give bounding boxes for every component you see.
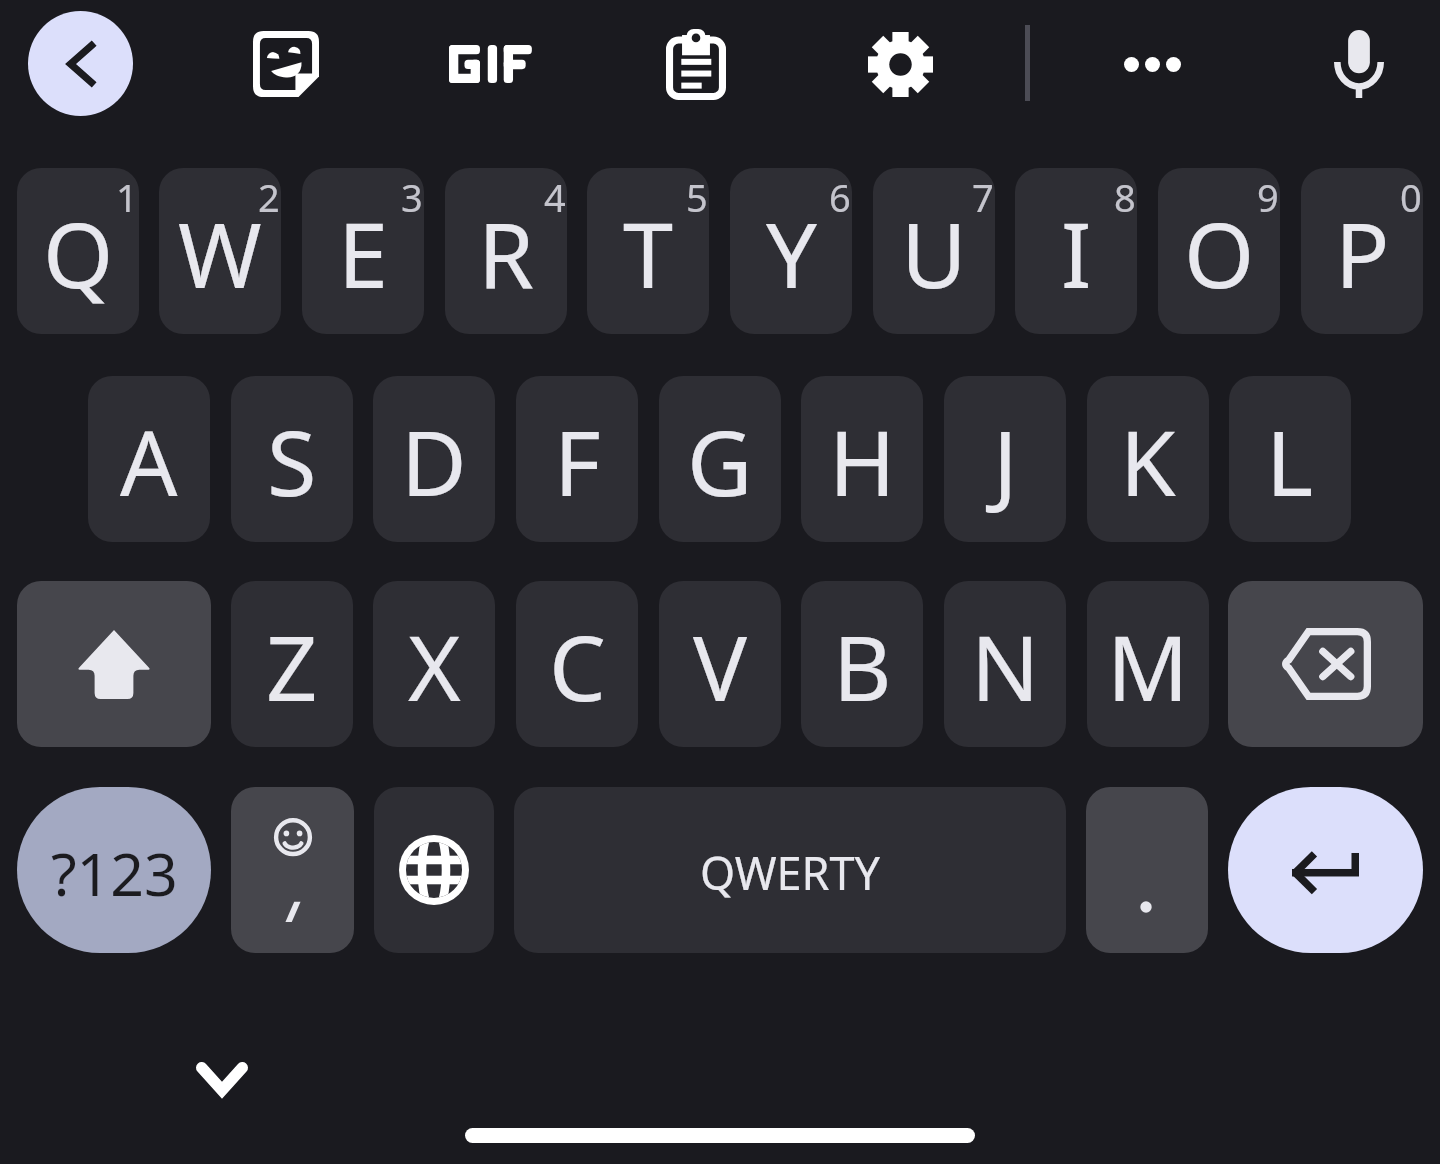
staticText: 2 [258,171,280,223]
button[interactable]: Z [231,581,353,747]
staticText: G [687,400,753,523]
staticText: N [971,605,1040,728]
button[interactable]: O [1158,168,1280,334]
button[interactable]: QWERTY [514,787,1066,953]
staticText: 4 [544,171,566,223]
staticText: X [408,605,461,728]
staticText: T [623,192,674,315]
button[interactable]: L [1229,376,1351,542]
staticText: Y [766,192,817,315]
button[interactable]: Q [17,168,139,334]
button[interactable]: Hide keyboard [172,1029,272,1129]
staticText: QWERTY [700,842,881,903]
staticText: O [1184,192,1255,315]
button[interactable]: Enter [1228,787,1423,953]
staticText: D [401,400,467,523]
staticText: 1 [116,171,138,223]
staticText: C [549,605,606,728]
staticText: 6 [829,171,851,223]
staticText: 9 [1257,171,1279,223]
staticText: A [120,400,178,523]
button[interactable]: Backspace [1228,581,1423,747]
staticText: W [178,192,262,315]
button[interactable]: A [88,376,210,542]
button[interactable]: GIF [436,9,546,119]
staticText: P [1335,192,1390,315]
staticText: J [993,400,1018,523]
staticText: ?123 [51,833,178,913]
button[interactable]: J [944,376,1066,542]
button[interactable]: Switch language [374,787,494,953]
button[interactable]: Settings [845,9,955,119]
staticText: U [901,192,967,315]
button[interactable]: Back [28,11,133,116]
staticText: E [338,192,389,315]
staticText: 7 [972,171,994,223]
staticText: 0 [1400,171,1422,223]
button[interactable]: Y [730,168,852,334]
button[interactable]: R [445,168,567,334]
button[interactable]: Stickers [231,9,341,119]
button[interactable]: V [659,581,781,747]
staticText: F [554,400,601,523]
button[interactable]: X [373,581,495,747]
staticText: 5 [686,171,708,223]
staticText: H [829,400,896,523]
button[interactable]: Clipboard [641,9,751,119]
button[interactable]: Shift [17,581,211,747]
staticText: L [1266,400,1314,523]
button[interactable]: K [1087,376,1209,542]
button[interactable]: ?123 [17,787,211,953]
staticText: Q [43,192,114,315]
staticText: K [1120,400,1176,523]
button[interactable]: C [516,581,638,747]
staticText: Z [266,605,318,728]
button[interactable]: B [801,581,923,747]
button[interactable]: Voice input [1304,9,1414,119]
button[interactable]: Period [1086,787,1208,953]
button[interactable]: Emoji [231,787,354,953]
button[interactable]: D [373,376,495,542]
button[interactable]: H [801,376,923,542]
staticText: V [693,605,747,728]
button[interactable]: More options [1097,9,1207,119]
staticText: I [1061,192,1092,315]
button[interactable]: P [1301,168,1423,334]
button[interactable]: T [587,168,709,334]
button[interactable]: S [231,376,353,542]
button[interactable]: W [159,168,281,334]
staticText: B [833,605,892,728]
button[interactable]: M [1087,581,1209,747]
button[interactable]: E [302,168,424,334]
staticText: 8 [1114,171,1136,223]
button[interactable]: I [1015,168,1137,334]
staticText: S [267,400,317,523]
staticText: R [478,192,534,315]
button[interactable]: G [659,376,781,542]
staticText: M [1107,605,1189,728]
button[interactable]: U [873,168,995,334]
button[interactable]: N [944,581,1066,747]
staticText: 3 [401,171,423,223]
button[interactable]: F [516,376,638,542]
